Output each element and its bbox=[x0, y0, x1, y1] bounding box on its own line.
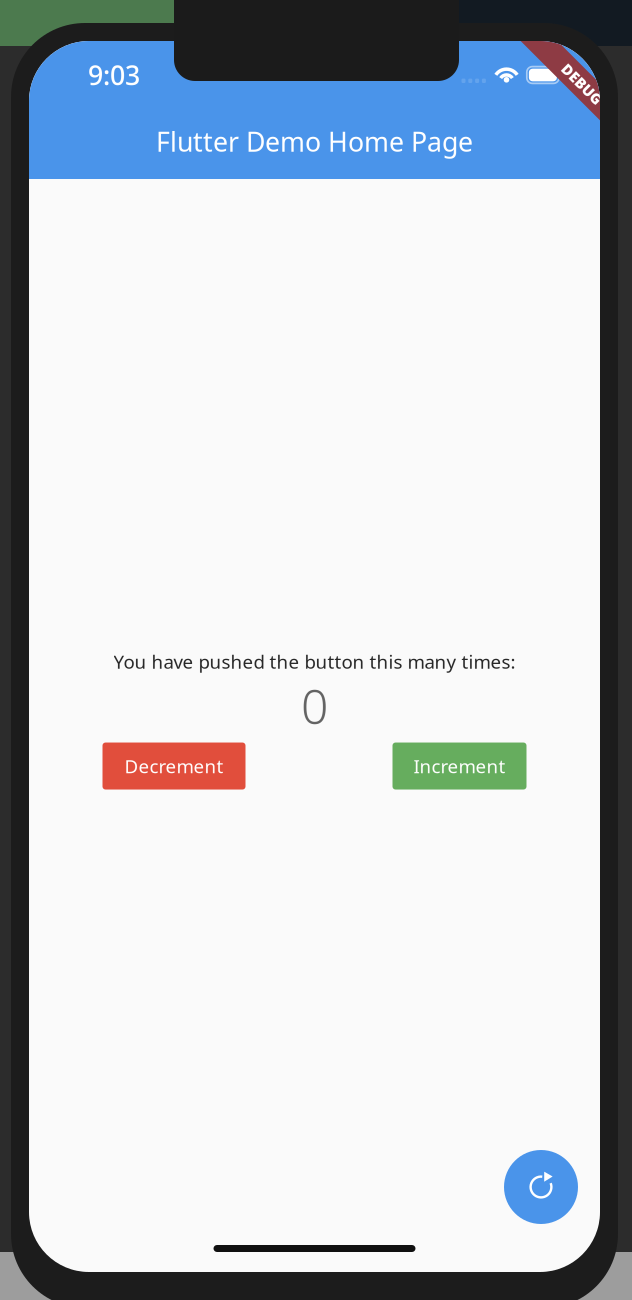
button[interactable]: Increment bbox=[392, 742, 526, 789]
staticText: 0 bbox=[301, 674, 328, 737]
staticText: Flutter Demo Home Page bbox=[156, 124, 473, 159]
staticText: You have pushed the button this many tim… bbox=[113, 649, 515, 674]
staticText: Decrement bbox=[124, 754, 223, 778]
staticText: 9:03 bbox=[88, 57, 140, 93]
staticText: Increment bbox=[413, 754, 505, 778]
button[interactable]: Decrement bbox=[102, 742, 245, 789]
staticText: DEBUG bbox=[556, 74, 607, 94]
